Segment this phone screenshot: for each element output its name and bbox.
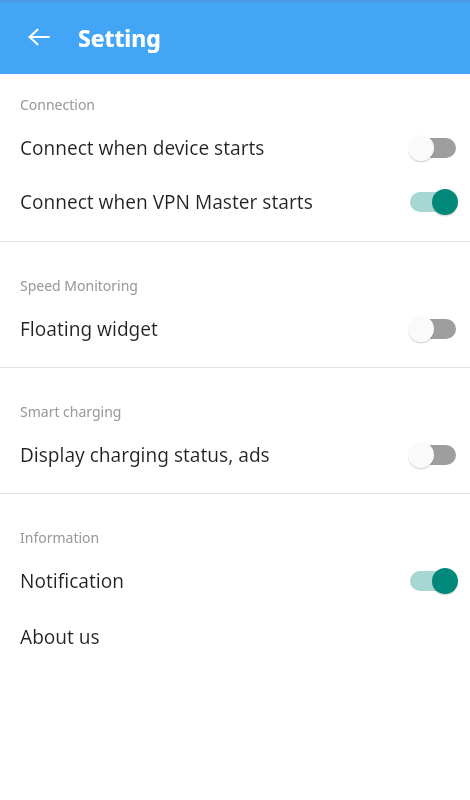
staticText: Connect when device starts xyxy=(20,135,407,161)
button[interactable]: Display charging status, ads xyxy=(0,428,470,482)
button[interactable]: Floating widget xyxy=(0,302,470,356)
staticText: About us xyxy=(20,624,470,650)
button[interactable]: Connect when device starts xyxy=(0,121,470,175)
staticText: Floating widget xyxy=(20,316,407,342)
staticText: Setting xyxy=(78,22,161,53)
staticText: Information xyxy=(20,528,100,547)
staticText: Display charging status, ads xyxy=(20,442,407,468)
button[interactable]: Notification xyxy=(0,554,470,608)
staticText: Speed Monitoring xyxy=(20,276,138,295)
staticText: Notification xyxy=(20,568,407,594)
button[interactable]: Connect when VPN Master starts xyxy=(0,175,470,229)
staticText: Connection xyxy=(20,95,96,114)
button[interactable]: About us xyxy=(0,608,470,666)
staticText: Connect when VPN Master starts xyxy=(20,189,407,215)
button[interactable]: Back xyxy=(14,12,64,62)
staticText: Smart charging xyxy=(20,402,122,421)
